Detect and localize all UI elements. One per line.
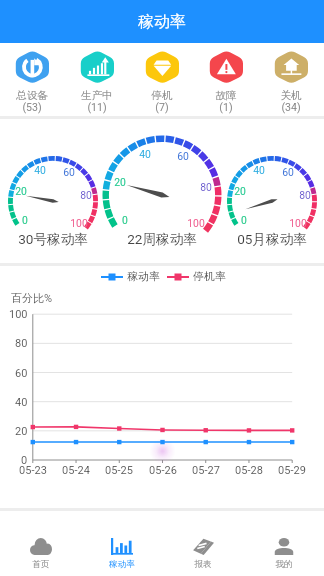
- staticText: 关机: [280, 89, 302, 102]
- button[interactable]: 故障: [194, 43, 259, 116]
- staticText: 80: [15, 337, 28, 350]
- staticText: 稼动率: [109, 559, 135, 570]
- button[interactable]: 首页: [0, 511, 81, 576]
- staticText: 40: [15, 396, 28, 409]
- staticText: 60: [63, 166, 75, 178]
- staticText: 40: [139, 148, 151, 160]
- button[interactable]: 稼动率: [81, 511, 162, 576]
- staticText: 总设备: [16, 89, 48, 102]
- staticText: 30号稼动率: [18, 231, 88, 248]
- staticText: 停机: [151, 89, 173, 102]
- staticText: 故障: [215, 89, 237, 102]
- staticText: 60: [15, 367, 28, 380]
- staticText: 20: [114, 176, 126, 188]
- staticText: 60: [177, 150, 189, 162]
- staticText: 05月稼动率: [237, 231, 307, 248]
- staticText: 05-24: [62, 464, 90, 477]
- button[interactable]: 总设备: [0, 43, 65, 116]
- staticText: 百分比%: [11, 291, 53, 305]
- staticText: 100: [70, 217, 88, 229]
- staticText: 0: [21, 454, 28, 467]
- staticText: 首页: [32, 559, 50, 570]
- staticText: 80: [299, 189, 311, 201]
- staticText: 100: [9, 308, 28, 321]
- staticText: 05-23: [19, 464, 47, 477]
- staticText: 0: [122, 214, 128, 226]
- staticText: 20: [15, 425, 28, 438]
- staticText: 0: [22, 214, 28, 226]
- staticText: 生产中: [81, 89, 113, 102]
- staticText: 05-26: [149, 464, 177, 477]
- staticText: 80: [80, 189, 92, 201]
- staticText: (53): [22, 101, 42, 113]
- button[interactable]: 关机: [259, 43, 324, 116]
- staticText: 我的: [275, 559, 293, 570]
- button[interactable]: 生产中: [65, 43, 130, 116]
- staticText: 报表: [194, 559, 212, 570]
- staticText: (1): [219, 101, 233, 113]
- staticText: 05-28: [235, 464, 263, 477]
- staticText: 100: [289, 217, 307, 229]
- staticText: 稼动率: [138, 12, 186, 32]
- staticText: 20: [15, 185, 27, 197]
- button[interactable]: 报表: [162, 511, 243, 576]
- staticText: 80: [200, 181, 212, 193]
- staticText: 40: [34, 164, 46, 176]
- button[interactable]: 我的: [243, 511, 324, 576]
- staticText: 05-25: [105, 464, 133, 477]
- staticText: 05-29: [278, 464, 306, 477]
- staticText: 40: [253, 164, 265, 176]
- staticText: 稼动率: [127, 270, 160, 284]
- staticText: 05-27: [192, 464, 220, 477]
- staticText: 100: [187, 217, 205, 229]
- staticText: 60: [282, 166, 294, 178]
- staticText: 0: [241, 214, 247, 226]
- button[interactable]: 停机: [130, 43, 195, 116]
- staticText: (11): [87, 101, 107, 113]
- staticText: (34): [281, 101, 301, 113]
- staticText: (7): [155, 101, 169, 113]
- staticText: 停机率: [193, 270, 226, 284]
- staticText: 20: [234, 185, 246, 197]
- staticText: 22周稼动率: [127, 231, 197, 248]
